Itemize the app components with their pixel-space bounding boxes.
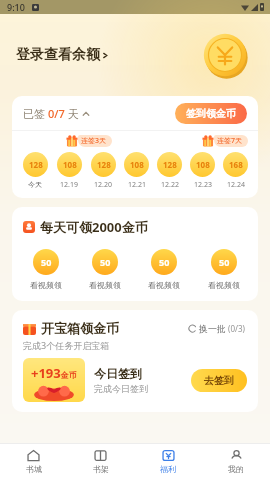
staticText: 换一批 [199, 323, 226, 334]
button[interactable]: 168 [219, 152, 252, 190]
staticText: 108 [196, 159, 210, 170]
staticText: 看视频领 [89, 280, 121, 290]
button[interactable]: +193金币 [23, 358, 85, 402]
button[interactable]: 108 [52, 152, 86, 190]
staticText: 128 [29, 159, 43, 170]
staticText: 12.22 [161, 180, 179, 190]
staticText: 看视频领 [148, 280, 180, 290]
button[interactable]: 已签 [23, 106, 90, 121]
staticText: 168 [229, 159, 243, 170]
staticText: 108 [130, 159, 144, 170]
other: 书架 [94, 449, 107, 462]
button[interactable]: 福利 [134, 443, 202, 480]
staticText: 完成今日签到 [94, 383, 148, 394]
staticText: 签到领金币 [186, 107, 236, 120]
staticText: 书城 [26, 464, 42, 474]
staticText: 128 [163, 159, 177, 170]
button[interactable]: 128 [153, 152, 186, 190]
button[interactable]: 128 [18, 152, 52, 189]
staticText: 今日签到 [94, 366, 142, 381]
button[interactable]: 书架 [67, 443, 134, 480]
staticText: 0/7 [48, 106, 65, 121]
staticText: 开宝箱领金币 [41, 320, 119, 336]
staticText: 完成3个任务开启宝箱 [23, 339, 110, 351]
button[interactable]: 我的 [202, 443, 270, 480]
button[interactable]: 50 [75, 249, 134, 290]
button[interactable]: 128 [86, 152, 120, 190]
other: 我的 [230, 449, 243, 462]
staticText: 50 [219, 256, 230, 268]
staticText: 108 [63, 159, 77, 170]
staticText: +193金币 [31, 364, 77, 382]
staticText: 已签 [23, 106, 48, 121]
staticText: 连签7天 [217, 136, 243, 146]
staticText: 书架 [93, 464, 109, 474]
button[interactable]: 登录查看余额 [16, 46, 109, 64]
staticText: 12.19 [60, 180, 78, 190]
button[interactable]: 书城 [0, 443, 67, 480]
other: 书城 [27, 449, 40, 462]
button[interactable]: 108 [186, 152, 219, 190]
staticText: 看视频领 [208, 280, 240, 290]
button[interactable]: 去签到 [191, 369, 247, 392]
button[interactable]: 108 [120, 152, 153, 190]
staticText: 12.21 [128, 180, 146, 190]
button[interactable]: 50 [16, 249, 75, 290]
staticText: 连签3天 [81, 136, 107, 146]
staticText: 50 [41, 256, 52, 268]
other: 福利 [162, 449, 175, 462]
button[interactable]: 50 [134, 249, 194, 290]
staticText: 12.23 [194, 180, 212, 190]
staticText: 去签到 [204, 374, 234, 387]
staticText: 50 [159, 256, 170, 268]
staticText: 50 [100, 256, 111, 268]
staticText: 看视频领 [30, 280, 62, 290]
staticText: (0/3) [228, 323, 245, 334]
button[interactable]: 签到领金币 [175, 103, 247, 124]
staticText: 福利 [160, 464, 176, 474]
staticText: 9:10 [7, 1, 25, 13]
button[interactable]: 换一批 [186, 321, 247, 336]
staticText: 今天 [28, 180, 42, 189]
staticText: 天 [65, 106, 82, 121]
staticText: 我的 [228, 464, 244, 474]
staticText: 每天可领2000金币 [40, 218, 148, 236]
staticText: 登录查看余额 [16, 46, 100, 64]
button[interactable]: 50 [194, 249, 254, 290]
staticText: 12.20 [94, 180, 112, 190]
staticText: 128 [97, 159, 111, 170]
staticText: 12.24 [227, 180, 245, 190]
